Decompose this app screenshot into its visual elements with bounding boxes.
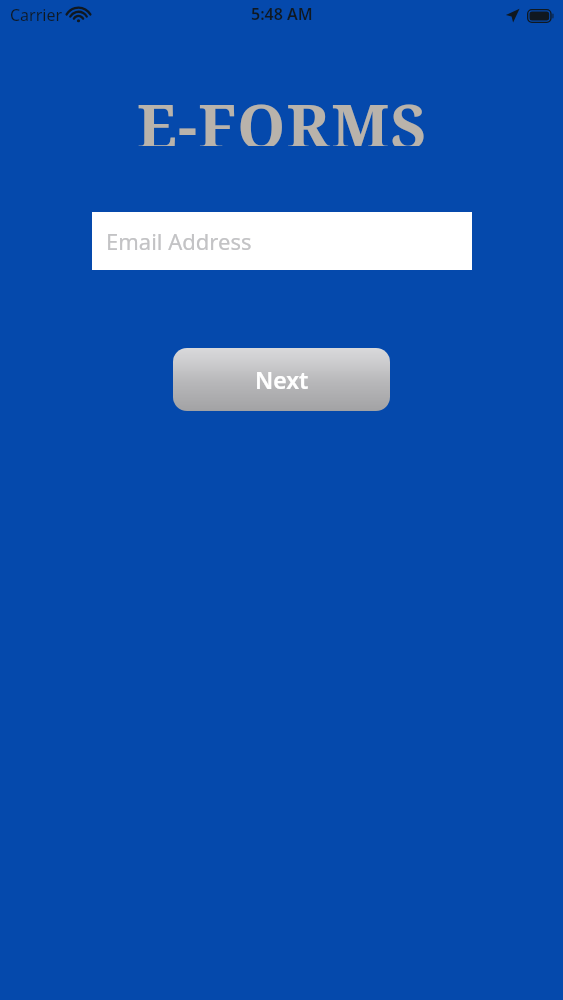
staticText: Next bbox=[255, 364, 309, 395]
staticText: Email Address bbox=[106, 226, 252, 256]
button[interactable]: Next bbox=[173, 348, 390, 411]
button[interactable]: Email Address bbox=[92, 212, 472, 270]
staticText: Carrier bbox=[10, 4, 63, 26]
staticText: E-FORMS bbox=[137, 84, 427, 146]
staticText: 5:48 AM bbox=[251, 3, 313, 25]
